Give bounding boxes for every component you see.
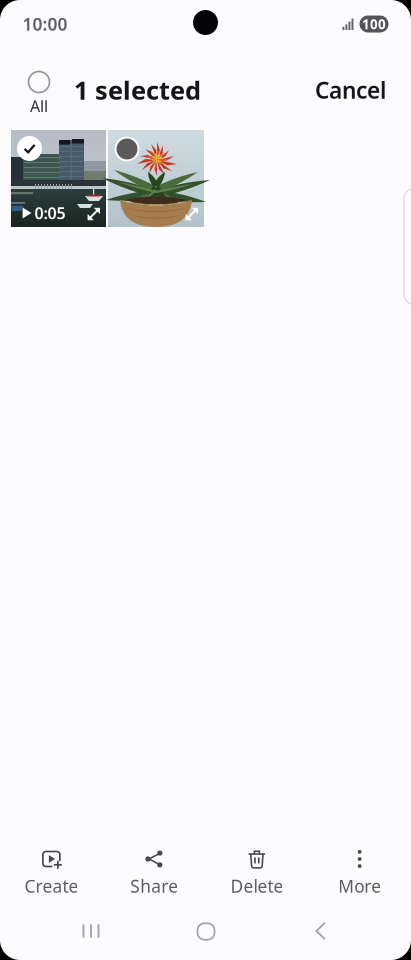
staticText: All — [30, 95, 48, 117]
staticText: Delete — [230, 874, 283, 897]
button[interactable]: Share — [103, 845, 206, 901]
button[interactable]: Select all — [16, 61, 62, 117]
staticText: 0:05 — [34, 202, 65, 224]
staticText: Create — [24, 874, 78, 897]
button[interactable]: Create — [0, 845, 103, 901]
staticText: Share — [130, 874, 178, 897]
staticText: 1 selected — [74, 73, 201, 107]
staticText: 100 — [362, 15, 386, 33]
button[interactable]: Back — [286, 909, 356, 953]
staticText: Cancel — [315, 75, 386, 105]
button[interactable]: Recents — [56, 909, 126, 953]
staticText: 10:00 — [22, 12, 67, 35]
button[interactable]: Video, 5 seconds, selected — [11, 130, 106, 227]
button[interactable]: More — [308, 845, 411, 901]
button[interactable]: Home — [171, 909, 241, 953]
button[interactable]: Delete — [205, 845, 308, 901]
staticText: More — [338, 874, 381, 897]
button[interactable]: Cancel — [311, 68, 389, 112]
button[interactable]: Photo — [108, 130, 204, 227]
